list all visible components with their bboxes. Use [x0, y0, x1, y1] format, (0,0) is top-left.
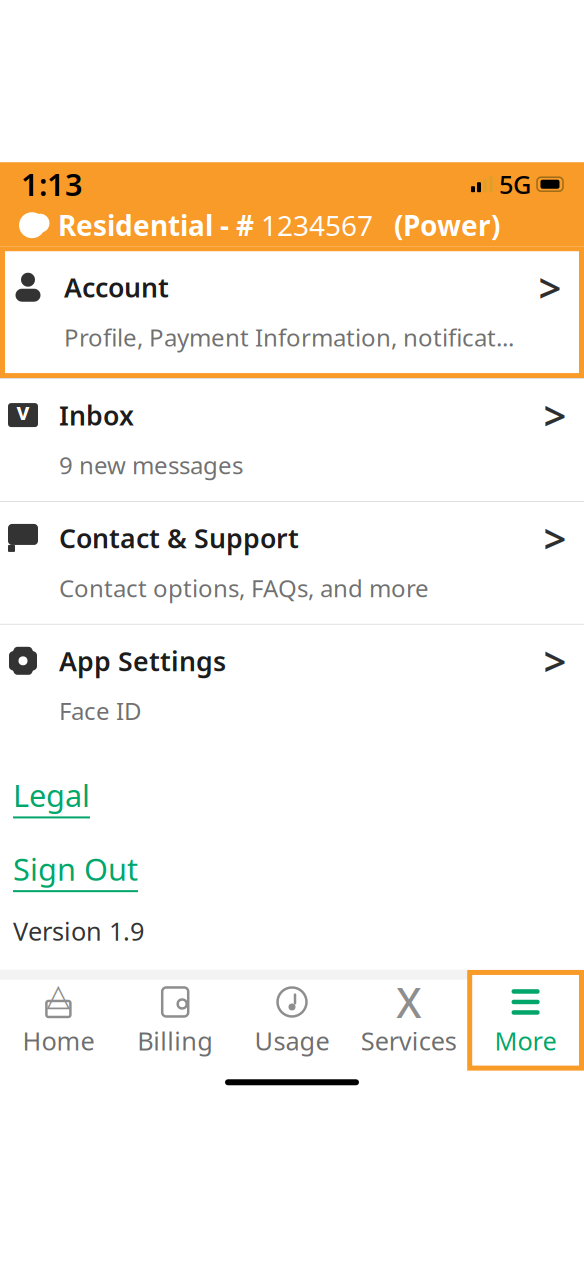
staticText: More: [495, 1024, 557, 1058]
button[interactable]: More: [472, 975, 579, 1066]
staticText: Face ID: [59, 695, 142, 727]
staticText: 9 new messages: [59, 449, 243, 481]
staticText: X: [396, 974, 421, 1029]
staticText: Sign Out: [13, 848, 138, 889]
button[interactable]: Residential - #: [0, 206, 584, 246]
staticText: Billing: [137, 1024, 213, 1058]
staticText: (Power): [373, 207, 500, 244]
staticText: >: [543, 634, 566, 687]
staticText: 1234567: [254, 207, 373, 244]
button[interactable]: X: [350, 975, 467, 1066]
staticText: 5G: [499, 167, 531, 201]
staticText: Usage: [254, 1024, 329, 1058]
button[interactable]: v: [0, 379, 584, 501]
staticText: Contact & Support: [59, 520, 299, 556]
button[interactable]: Legal: [13, 769, 90, 824]
button[interactable]: Account: [5, 251, 579, 373]
staticText: Inbox: [59, 397, 134, 433]
button[interactable]: Usage: [234, 975, 350, 1066]
staticText: Residential - #: [58, 207, 254, 244]
staticText: Contact options, FAQs, and more: [59, 572, 429, 604]
staticText: △: [46, 978, 70, 1012]
staticText: Home: [22, 1024, 94, 1058]
staticText: 1:13: [21, 164, 83, 204]
staticText: Version 1.9: [13, 914, 144, 948]
button[interactable]: △: [0, 975, 117, 1066]
staticText: Account: [64, 269, 169, 305]
staticText: >: [543, 388, 566, 442]
staticText: Legal: [13, 775, 90, 815]
staticText: v: [16, 396, 29, 426]
button[interactable]: Sign Out: [13, 842, 138, 898]
button[interactable]: Billing: [117, 975, 234, 1066]
button[interactable]: Contact & Support: [0, 502, 584, 624]
staticText: >: [543, 511, 566, 564]
button[interactable]: App Settings: [0, 625, 584, 747]
staticText: >: [538, 261, 561, 314]
staticText: Profile, Payment Information, notificat.…: [64, 321, 514, 353]
staticText: Services: [361, 1024, 457, 1058]
staticText: App Settings: [59, 643, 226, 678]
